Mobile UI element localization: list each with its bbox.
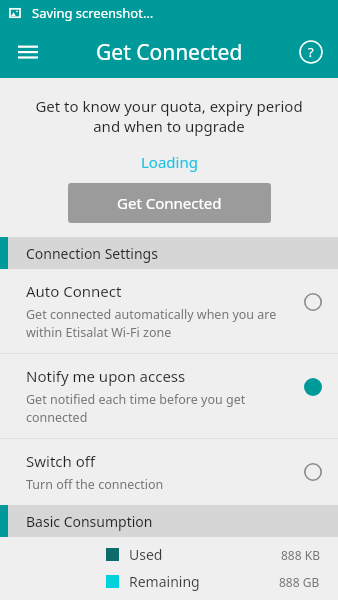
staticText: Get Connected: [96, 38, 243, 67]
button[interactable]: Get Connected: [68, 183, 271, 223]
button[interactable]: Switch off: [0, 439, 338, 505]
staticText: 888 KB: [281, 547, 320, 563]
staticText: Switch off: [26, 451, 96, 471]
button[interactable]: Auto Connect: [0, 269, 338, 353]
staticText: Connection Settings: [26, 244, 158, 263]
staticText: Get notified each time before you get co…: [26, 391, 246, 426]
staticText: Basic Consumption: [26, 512, 153, 531]
button[interactable]: Open navigation menu: [8, 32, 48, 72]
staticText: 888 GB: [279, 574, 320, 590]
button[interactable]: Notify me upon access: [0, 354, 338, 438]
staticText: ?: [308, 43, 314, 61]
staticText: Get connected automatically when you are…: [26, 306, 277, 341]
staticText: Notify me upon access: [26, 366, 186, 386]
staticText: Saving screenshot…: [32, 4, 154, 22]
staticText: Get to know your quota, expiry period an…: [16, 96, 322, 136]
button[interactable]: Help: [293, 34, 329, 70]
staticText: Turn off the connection: [26, 476, 164, 493]
staticText: Remaining: [129, 572, 200, 591]
staticText: Auto Connect: [26, 281, 122, 301]
staticText: Used: [129, 545, 163, 564]
staticText: Loading: [141, 152, 198, 172]
staticText: Get Connected: [117, 193, 222, 213]
